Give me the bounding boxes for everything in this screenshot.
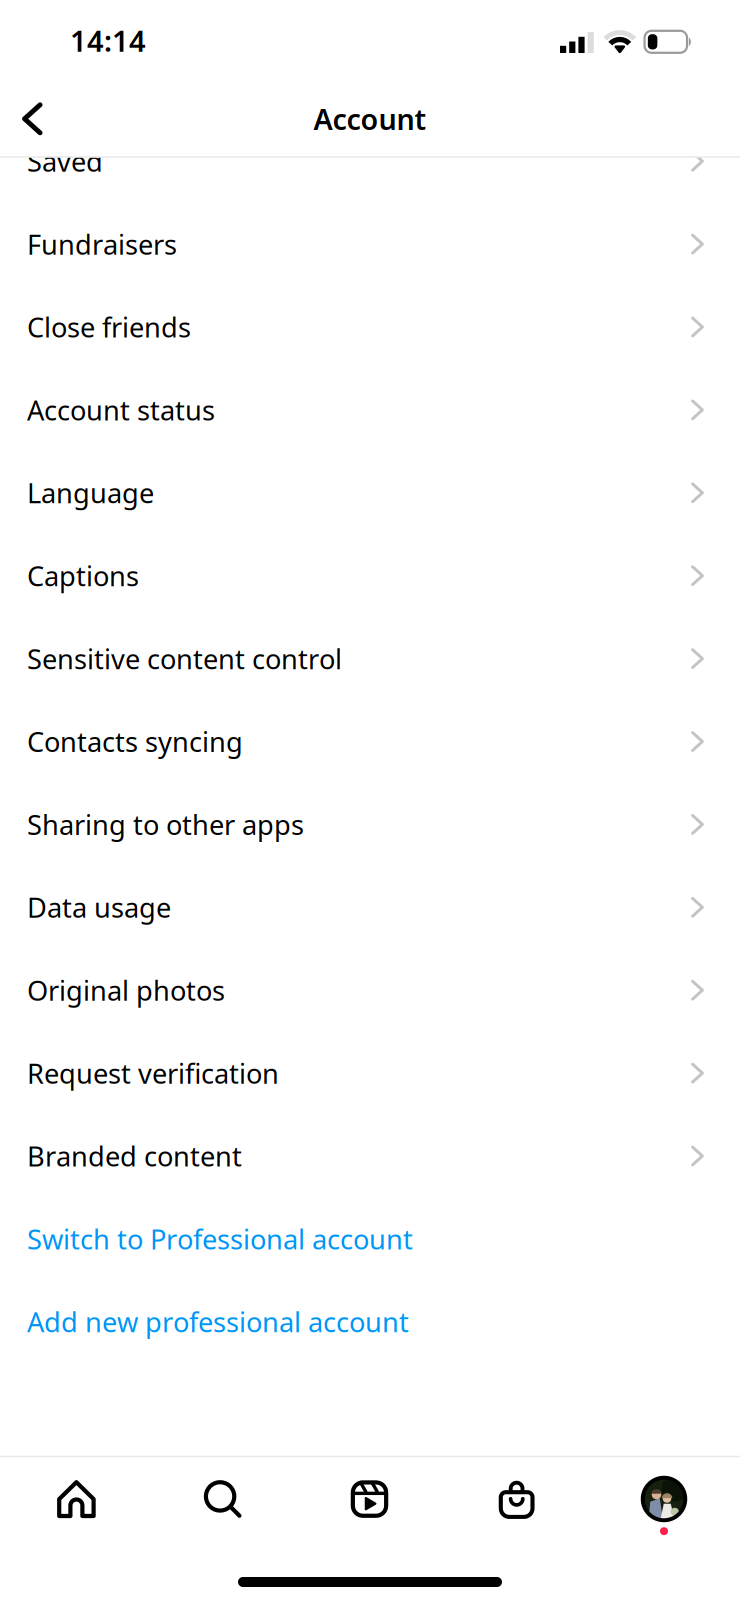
staticText: Request verification bbox=[27, 1055, 279, 1092]
button[interactable]: Add new professional account bbox=[0, 1280, 740, 1363]
button[interactable]: Fundraisers bbox=[0, 203, 740, 285]
button[interactable]: Home bbox=[8, 1455, 144, 1543]
button[interactable]: Request verification bbox=[0, 1032, 740, 1115]
staticText: Add new professional account bbox=[27, 1303, 409, 1340]
button[interactable]: Profile bbox=[596, 1457, 732, 1545]
staticText: Account bbox=[313, 99, 426, 138]
staticText: Sharing to other apps bbox=[27, 806, 304, 843]
button[interactable]: Sensitive content control bbox=[0, 617, 740, 700]
button[interactable]: Language bbox=[0, 451, 740, 534]
button[interactable]: Shop bbox=[449, 1454, 585, 1542]
button[interactable]: Reels bbox=[301, 1455, 437, 1543]
staticText: Data usage bbox=[27, 889, 171, 926]
staticText: Switch to Professional account bbox=[27, 1220, 413, 1257]
button[interactable]: Data usage bbox=[0, 866, 740, 949]
staticText: Branded content bbox=[27, 1137, 242, 1174]
button[interactable]: Close friends bbox=[0, 286, 740, 368]
button[interactable]: Account status bbox=[0, 368, 740, 451]
button[interactable]: Contacts syncing bbox=[0, 700, 740, 783]
button[interactable]: Original photos bbox=[0, 949, 740, 1032]
staticText: Saved bbox=[27, 143, 103, 180]
button[interactable]: Branded content bbox=[0, 1114, 740, 1197]
staticText: Sensitive content control bbox=[27, 640, 342, 677]
button[interactable]: Switch to Professional account bbox=[0, 1197, 740, 1280]
staticText: Close friends bbox=[27, 308, 191, 345]
button[interactable]: Captions bbox=[0, 534, 740, 617]
staticText: Account status bbox=[27, 391, 215, 428]
button[interactable]: Search bbox=[155, 1455, 291, 1543]
button[interactable]: Saved bbox=[0, 120, 740, 203]
button[interactable]: Sharing to other apps bbox=[0, 783, 740, 866]
staticText: 14:14 bbox=[70, 21, 146, 60]
button[interactable]: Back bbox=[1, 83, 63, 155]
staticText: Contacts syncing bbox=[27, 723, 243, 760]
staticText: Captions bbox=[27, 557, 139, 594]
staticText: Language bbox=[27, 474, 154, 511]
staticText: Original photos bbox=[27, 972, 225, 1009]
staticText: Fundraisers bbox=[27, 226, 177, 263]
